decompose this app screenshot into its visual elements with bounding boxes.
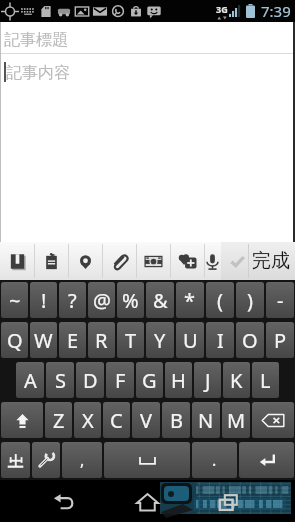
staticText: D [83, 367, 98, 394]
button[interactable]: Home [107, 480, 187, 522]
staticText: ) [247, 287, 253, 314]
button[interactable]: C [103, 402, 130, 438]
button[interactable]: % [117, 282, 144, 318]
staticText: Z [53, 407, 65, 434]
button[interactable]: X [74, 402, 101, 438]
staticText: ? [68, 287, 77, 314]
button[interactable]: F [106, 362, 134, 398]
staticText: R [95, 327, 108, 354]
button[interactable]: del [252, 402, 294, 438]
button[interactable]: K [223, 362, 250, 398]
button[interactable]: W [30, 322, 57, 358]
button[interactable]: E [59, 322, 86, 358]
button[interactable]: Z [45, 402, 72, 438]
staticText: 7:39 [261, 1, 291, 21]
button[interactable]: ~ [1, 282, 28, 318]
button[interactable]: S [46, 362, 74, 398]
staticText: , [80, 449, 85, 471]
staticText: G [142, 367, 157, 394]
staticText: J [205, 367, 211, 394]
button[interactable]: M [222, 402, 250, 438]
button[interactable]: O [236, 322, 264, 358]
staticText: 記事標題 [4, 30, 68, 50]
button[interactable]: L [252, 362, 279, 398]
staticText: C [110, 407, 123, 434]
button[interactable]: Q [1, 322, 28, 358]
button[interactable]: A [16, 362, 44, 398]
button[interactable]: Tag [34, 242, 68, 280]
staticText: X [82, 407, 94, 434]
staticText: P [274, 327, 287, 354]
button[interactable]: wrench [32, 442, 60, 478]
staticText: W [34, 327, 53, 354]
button[interactable]: space [104, 442, 190, 478]
button[interactable]: Attach file [102, 242, 136, 280]
button[interactable]: V [132, 402, 160, 438]
button[interactable]: B [162, 402, 190, 438]
staticText: T [125, 327, 137, 354]
button[interactable]: Y [146, 322, 174, 358]
button[interactable]: H [165, 362, 192, 398]
button[interactable]: . [192, 442, 237, 478]
staticText: ! [41, 287, 47, 314]
staticText: K [230, 367, 243, 394]
button[interactable]: * [176, 282, 204, 318]
button[interactable]: ! [30, 282, 57, 318]
staticText: B [170, 407, 183, 434]
staticText: M [227, 407, 246, 434]
staticText: U [183, 327, 198, 354]
button[interactable]: N [192, 402, 220, 438]
button[interactable]: T [117, 322, 144, 358]
button[interactable]: Back [23, 480, 103, 522]
button[interactable]: Add photo [170, 242, 204, 280]
button[interactable]: G [136, 362, 163, 398]
button[interactable]: Camera [136, 242, 170, 280]
button[interactable]: D [76, 362, 104, 398]
button[interactable]: - [266, 282, 294, 318]
button[interactable]: @ [88, 282, 115, 318]
button[interactable]: cjk [1, 442, 30, 478]
button[interactable]: , [62, 442, 102, 478]
staticText: 3G [216, 3, 228, 15]
staticText: % [122, 287, 139, 314]
staticText: I [217, 327, 224, 354]
staticText: A [24, 367, 37, 394]
staticText: Q [7, 327, 23, 354]
staticText: ( [217, 287, 223, 314]
button[interactable]: 完成 [221, 242, 295, 280]
button[interactable]: ? [59, 282, 86, 318]
button[interactable]: Recent apps [188, 480, 268, 522]
button[interactable]: U [176, 322, 204, 358]
staticText: H [171, 367, 186, 394]
staticText: & [153, 287, 168, 314]
staticText: - [277, 287, 284, 314]
button[interactable]: I [206, 322, 234, 358]
button[interactable]: Voice input [204, 242, 221, 280]
button[interactable]: ( [206, 282, 234, 318]
staticText: F [115, 367, 126, 394]
button[interactable]: & [146, 282, 174, 318]
staticText: ~ [9, 287, 21, 314]
staticText: 記事内容 [6, 63, 70, 83]
staticText: N [198, 407, 214, 434]
button[interactable]: shift [1, 402, 43, 438]
button[interactable]: enter [239, 442, 294, 478]
button[interactable]: ) [236, 282, 264, 318]
staticText: @ [93, 287, 111, 314]
staticText: 完成 [252, 249, 290, 273]
staticText: L [260, 367, 271, 394]
button[interactable]: Bookmark [0, 242, 34, 280]
staticText: S [55, 367, 66, 394]
button[interactable]: P [266, 322, 294, 358]
staticText: O [242, 327, 258, 354]
button[interactable]: R [88, 322, 115, 358]
staticText: * [184, 287, 196, 314]
staticText: E [67, 327, 79, 354]
staticText: . [212, 449, 217, 471]
button[interactable]: J [194, 362, 221, 398]
staticText: Y [154, 327, 166, 354]
button[interactable]: Location [68, 242, 102, 280]
staticText: V [140, 407, 152, 434]
